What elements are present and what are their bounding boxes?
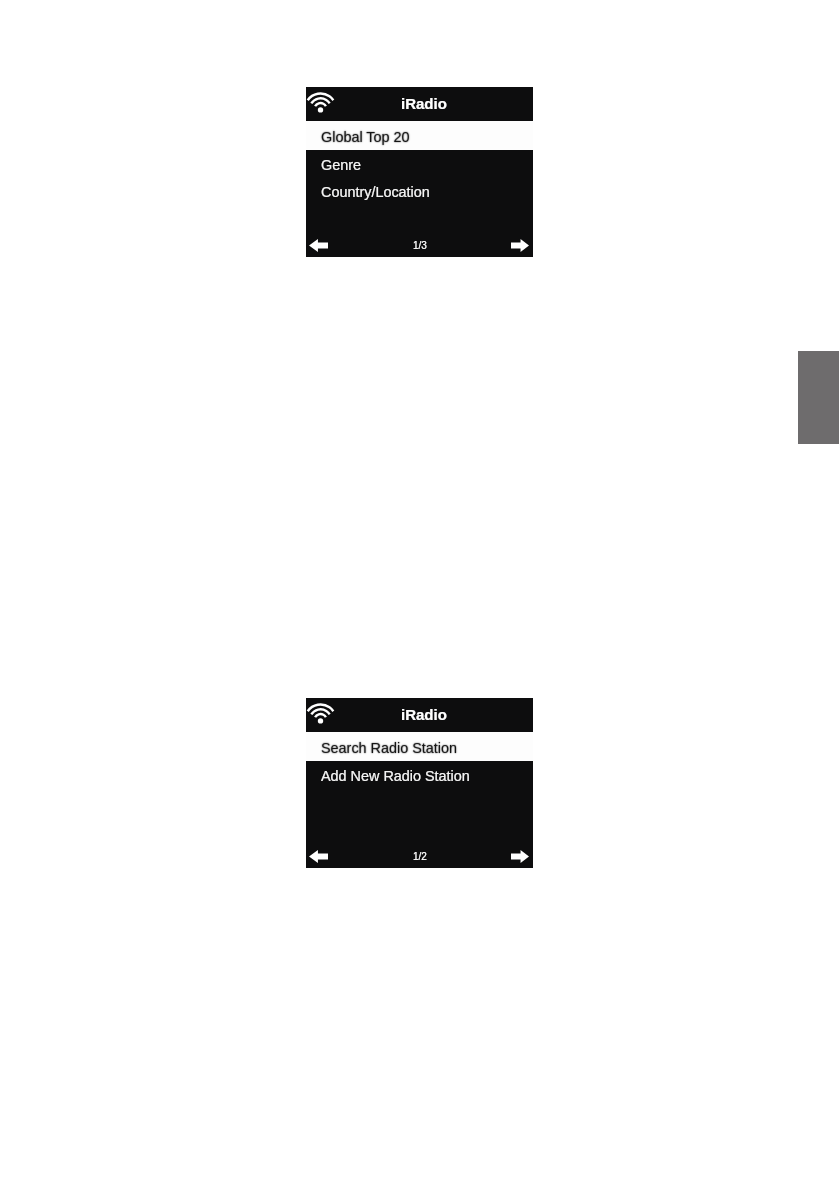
button[interactable]: Wi-Fi signal strength — [308, 702, 333, 723]
staticText: Add New Radio Station — [321, 768, 470, 784]
staticText: Global Top 20 — [321, 129, 410, 145]
button[interactable]: Add New Radio Station — [306, 761, 533, 788]
button[interactable]: Wi-Fi signal strength — [308, 91, 333, 112]
button[interactable]: Country/Location — [306, 177, 533, 204]
button[interactable]: Global Top 20 — [306, 121, 533, 150]
staticText: iRadio — [401, 706, 447, 723]
staticText: 1/3 — [413, 240, 427, 251]
button[interactable]: Next page — [511, 239, 529, 252]
button[interactable]: Previous page — [309, 850, 328, 863]
staticText: 1/2 — [413, 851, 427, 862]
button[interactable]: Genre — [306, 150, 533, 177]
staticText: iRadio — [401, 95, 447, 112]
staticText: Search Radio Station — [321, 740, 457, 756]
button[interactable]: Next page — [511, 850, 529, 863]
button[interactable]: Search Radio Station — [306, 732, 533, 761]
button[interactable]: Previous page — [309, 239, 328, 252]
staticText: Genre — [321, 157, 361, 173]
staticText: Country/Location — [321, 184, 430, 200]
